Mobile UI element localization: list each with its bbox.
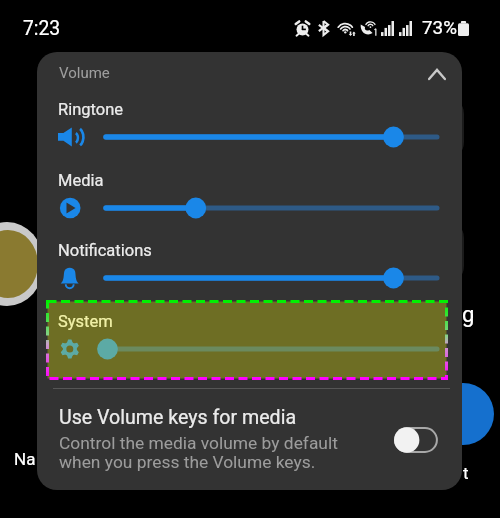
staticText: 7:23 bbox=[23, 17, 61, 40]
staticText: 73% bbox=[422, 17, 457, 39]
staticText: t bbox=[463, 463, 469, 483]
button[interactable]: Volume bbox=[37, 52, 462, 96]
button[interactable]: System bbox=[37, 315, 462, 385]
staticText: Na bbox=[14, 449, 36, 469]
button[interactable]: Use Volume keys for media bbox=[37, 397, 462, 489]
staticText: Ringtone bbox=[58, 100, 124, 119]
staticText: System bbox=[58, 312, 113, 331]
button[interactable]: Media bbox=[37, 174, 462, 244]
button[interactable]: Use Volume keys for media bbox=[394, 427, 438, 453]
button[interactable]: Notifications bbox=[37, 244, 462, 314]
button[interactable]: Ringtone bbox=[37, 103, 462, 173]
staticText: Use Volume keys for media bbox=[59, 406, 297, 429]
staticText: Notifications bbox=[58, 241, 152, 260]
staticText: Media bbox=[58, 171, 104, 190]
staticText: Volume bbox=[59, 64, 110, 82]
staticText: Control the media volume by default when… bbox=[59, 433, 338, 472]
staticText: g bbox=[462, 302, 475, 328]
button[interactable]: Collapse bbox=[415, 52, 459, 96]
